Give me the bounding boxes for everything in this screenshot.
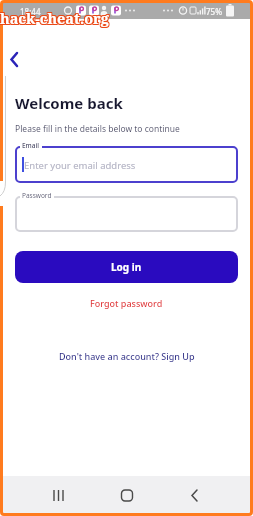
button[interactable]: Log in (15, 251, 238, 283)
button[interactable] (6, 48, 30, 72)
button[interactable] (183, 483, 207, 507)
staticText: hack-cheat.org (1, 7, 110, 27)
staticText: hack-cheat.org (1, 9, 110, 29)
staticText: 75% (206, 6, 222, 17)
staticText: Forgot password (90, 297, 163, 309)
staticText: 18:44 (20, 6, 41, 17)
button[interactable] (47, 483, 71, 507)
button[interactable]: Forgot password (90, 297, 163, 309)
staticText: Password (22, 191, 52, 200)
button[interactable] (115, 483, 139, 507)
button[interactable]: Don't have an account? Sign Up (59, 350, 195, 362)
staticText: Please fill in the details below to cont… (15, 123, 180, 135)
staticText: hack-cheat.org (1, 8, 110, 28)
button[interactable]: Enter your email address (15, 146, 238, 183)
staticText: hack-cheat.org (0, 9, 108, 29)
staticText: Log in (111, 260, 142, 274)
staticText: Email (22, 141, 40, 150)
staticText: hack-cheat.org (0, 7, 108, 27)
staticText: hack-cheat.org (0, 8, 109, 28)
staticText: Don't have an account? Sign Up (59, 350, 195, 362)
staticText: Enter your email address (24, 159, 136, 172)
staticText: hack-cheat.org (0, 7, 109, 27)
button[interactable] (15, 196, 238, 232)
staticText: hack-cheat.org (0, 8, 108, 28)
staticText: Welcome back (15, 93, 123, 113)
staticText: hack-cheat.org (0, 9, 109, 29)
